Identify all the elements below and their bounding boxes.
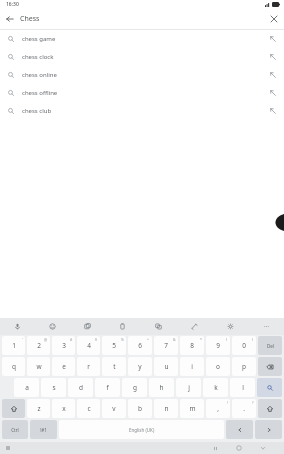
staticText: Chess [20, 14, 264, 24]
button[interactable]: o [206, 357, 230, 376]
button[interactable]: left [226, 420, 253, 439]
button[interactable]: 7 [154, 336, 178, 355]
button[interactable]: 6 [128, 336, 152, 355]
button[interactable]: Keyboard switcher [4, 444, 12, 452]
staticText: p [242, 362, 246, 371]
button[interactable]: shift [258, 399, 282, 418]
button[interactable]: 9 [206, 336, 230, 355]
staticText: a [25, 383, 29, 392]
button[interactable]: x [52, 399, 75, 418]
button[interactable]: r [77, 357, 100, 376]
button[interactable]: chess game [0, 30, 284, 48]
button[interactable]: z [27, 399, 50, 418]
staticText: # [70, 337, 73, 342]
button[interactable]: c [77, 399, 100, 418]
button[interactable]: clipboard [105, 318, 140, 335]
button[interactable]: n [154, 399, 178, 418]
button[interactable]: g [122, 378, 147, 397]
button[interactable]: v [102, 399, 126, 418]
staticText: Del [267, 343, 274, 349]
staticText: f [106, 383, 109, 392]
button[interactable]: shift [2, 399, 25, 418]
staticText: 5 [112, 341, 116, 350]
button[interactable]: Recents [208, 442, 222, 454]
button[interactable]: 1 [2, 336, 25, 355]
button[interactable]: gif [70, 318, 105, 335]
button[interactable]: u [154, 357, 178, 376]
staticText: 16:30 [6, 1, 19, 8]
staticText: 9 [216, 341, 220, 350]
button[interactable]: more [248, 318, 284, 335]
button[interactable]: right [255, 420, 282, 439]
button[interactable]: q [2, 357, 25, 376]
staticText: 4 [87, 341, 91, 350]
button[interactable]: Clear [264, 9, 284, 29]
button[interactable]: y [128, 357, 152, 376]
staticText: chess clock [22, 53, 262, 61]
button[interactable]: 5 [102, 336, 126, 355]
staticText: % [121, 337, 124, 342]
button[interactable]: , [206, 399, 230, 418]
button[interactable]: Home [232, 442, 246, 454]
button[interactable]: !#1 [30, 420, 57, 439]
button[interactable]: 4 [77, 336, 100, 355]
button[interactable]: f [95, 378, 120, 397]
button[interactable]: e [52, 357, 75, 376]
button[interactable]: k [203, 378, 228, 397]
button[interactable]: b [128, 399, 152, 418]
button[interactable]: settings [212, 318, 248, 335]
button[interactable]: chess online [0, 66, 284, 84]
button[interactable]: t [102, 357, 126, 376]
staticText: & [173, 337, 176, 342]
staticText: @ [44, 337, 48, 342]
staticText: 2 [37, 341, 41, 350]
staticText: ) [252, 337, 254, 342]
staticText: b [138, 404, 142, 413]
staticText: ^ [147, 337, 150, 342]
button[interactable]: l [230, 378, 255, 397]
button[interactable]: Back [0, 9, 20, 29]
button[interactable]: i [180, 357, 204, 376]
staticText: * [200, 337, 202, 342]
button[interactable]: Insert suggestion [262, 48, 284, 66]
button[interactable]: p [232, 357, 256, 376]
button[interactable]: search [257, 378, 282, 397]
button[interactable]: Hide keyboard [256, 442, 270, 454]
button[interactable]: handwrite [176, 318, 212, 335]
staticText: l [242, 383, 244, 392]
button[interactable]: chess clock [0, 48, 284, 66]
button[interactable]: chess club [0, 102, 284, 120]
button[interactable]: 0 [232, 336, 256, 355]
button[interactable]: j [176, 378, 201, 397]
button[interactable]: m [180, 399, 204, 418]
button[interactable]: translate [140, 318, 176, 335]
button[interactable]: Del [258, 336, 282, 355]
staticText: e [62, 362, 66, 371]
button[interactable]: d [68, 378, 93, 397]
staticText: d [79, 383, 83, 392]
button[interactable]: s [41, 378, 66, 397]
button[interactable]: Ctrl [2, 420, 28, 439]
button[interactable]: a [14, 378, 39, 397]
button[interactable]: Insert suggestion [262, 84, 284, 102]
staticText: g [133, 383, 137, 392]
button[interactable]: backspace [258, 357, 282, 376]
button[interactable]: chess offline [0, 84, 284, 102]
button[interactable]: English (UK) [59, 420, 224, 439]
staticText: chess club [22, 107, 262, 115]
button[interactable]: h [149, 378, 174, 397]
button[interactable]: 8 [180, 336, 204, 355]
button[interactable]: mic [0, 318, 35, 335]
staticText: 6 [138, 341, 142, 350]
button[interactable]: 2 [27, 336, 50, 355]
button[interactable]: Insert suggestion [262, 66, 284, 84]
button[interactable]: Insert suggestion [262, 30, 284, 48]
staticText: x [62, 404, 66, 413]
staticText: English (UK) [129, 427, 155, 433]
button[interactable]: . [232, 399, 256, 418]
button[interactable]: 3 [52, 336, 75, 355]
button[interactable]: Insert suggestion [262, 102, 284, 120]
button[interactable]: w [27, 357, 50, 376]
button[interactable]: sticker [35, 318, 70, 335]
staticText: ( [226, 337, 228, 342]
